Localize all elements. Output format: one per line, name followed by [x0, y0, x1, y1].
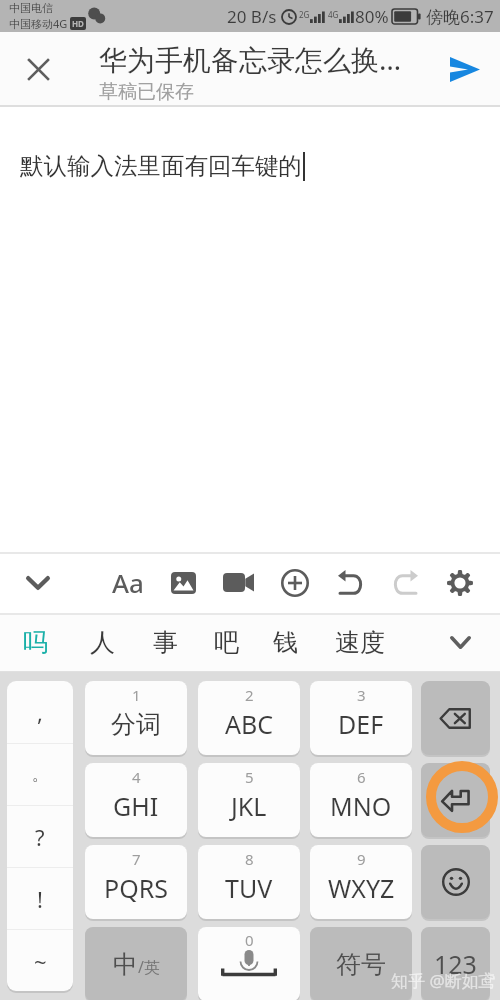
staticText: 傍晚6:37: [426, 5, 494, 28]
button[interactable]: 7: [85, 845, 187, 919]
staticText: 中: [113, 949, 138, 980]
button[interactable]: !: [7, 868, 73, 929]
staticText: 知乎 @断如鸢: [391, 969, 496, 992]
button[interactable]: Insert image: [156, 552, 210, 613]
staticText: ?: [35, 822, 45, 852]
button[interactable]: 钱: [259, 613, 311, 672]
button[interactable]: Undo: [323, 552, 377, 613]
staticText: !: [37, 884, 43, 914]
staticText: 123: [434, 947, 477, 981]
staticText: 2G: [299, 9, 310, 20]
button[interactable]: 1: [85, 681, 187, 755]
button[interactable]: 5: [198, 763, 300, 837]
staticText: PQRS: [104, 871, 168, 905]
button[interactable]: More candidates: [432, 613, 488, 672]
button[interactable]: ,: [7, 681, 73, 743]
staticText: ,: [37, 697, 43, 727]
button[interactable]: Text format: [101, 552, 155, 613]
staticText: GHI: [113, 789, 159, 823]
button[interactable]: 中: [85, 927, 187, 1000]
staticText: 20 B/s: [227, 5, 277, 28]
staticText: 符号: [336, 949, 386, 980]
staticText: 中国移动4G: [9, 16, 68, 31]
button[interactable]: Space, voice input: [198, 927, 300, 1000]
button[interactable]: 速度: [326, 613, 394, 672]
staticText: 中国电信: [9, 1, 53, 15]
staticText: ABC: [225, 707, 274, 741]
staticText: 0: [245, 930, 254, 950]
staticText: 4G: [328, 9, 339, 20]
staticText: 6: [357, 767, 366, 787]
staticText: 吧: [214, 627, 239, 658]
staticText: 9: [357, 849, 366, 869]
staticText: 速度: [335, 627, 385, 658]
button[interactable]: 6: [310, 763, 412, 837]
button[interactable]: ?: [7, 806, 73, 867]
staticText: 吗: [23, 627, 48, 658]
button[interactable]: 123: [421, 927, 490, 1000]
button[interactable]: 8: [198, 845, 300, 919]
button[interactable]: 吧: [200, 613, 252, 672]
staticText: 分词: [111, 709, 161, 740]
staticText: 8: [245, 849, 254, 869]
staticText: DEF: [338, 707, 384, 741]
staticText: 钱: [273, 627, 298, 658]
button[interactable]: 事: [139, 613, 191, 672]
button[interactable]: Collapse keyboard: [11, 552, 65, 613]
staticText: JKL: [231, 789, 267, 823]
button[interactable]: Enter: [421, 763, 490, 837]
button[interactable]: 人: [76, 613, 128, 672]
button[interactable]: ~: [7, 930, 73, 991]
button[interactable]: Close: [0, 32, 76, 107]
staticText: 事: [153, 627, 178, 658]
staticText: 4: [132, 767, 141, 787]
button[interactable]: 2: [198, 681, 300, 755]
button[interactable]: Settings: [433, 552, 487, 613]
staticText: 5: [245, 767, 254, 787]
staticText: 人: [90, 627, 115, 658]
staticText: Aa: [112, 565, 144, 600]
button[interactable]: Insert video: [211, 552, 265, 613]
staticText: 默认输入法里面有回车键的: [20, 151, 302, 181]
button[interactable]: Add: [268, 552, 322, 613]
button[interactable]: 9: [310, 845, 412, 919]
staticText: TUV: [225, 871, 273, 905]
staticText: 。: [32, 764, 49, 785]
staticText: 草稿已保存: [99, 80, 194, 104]
staticText: WXYZ: [328, 871, 395, 905]
staticText: HD: [72, 18, 84, 29]
button[interactable]: Delete: [421, 681, 490, 755]
staticText: 2: [245, 685, 254, 705]
staticText: 华为手机备忘录怎么换…: [99, 40, 402, 78]
button[interactable]: 。: [7, 744, 73, 805]
staticText: 3: [357, 685, 366, 705]
button[interactable]: 吗: [9, 613, 61, 672]
button[interactable]: Redo: [378, 552, 432, 613]
button[interactable]: 3: [310, 681, 412, 755]
staticText: MNO: [330, 789, 392, 823]
staticText: /英: [138, 956, 160, 978]
staticText: 7: [132, 849, 141, 869]
staticText: 1: [132, 685, 141, 705]
staticText: ~: [34, 946, 47, 976]
button[interactable]: 4: [85, 763, 187, 837]
button[interactable]: Send: [430, 32, 500, 107]
button[interactable]: 符号: [310, 927, 412, 1000]
button[interactable]: Emoji: [421, 845, 490, 919]
staticText: 80%: [355, 5, 389, 28]
